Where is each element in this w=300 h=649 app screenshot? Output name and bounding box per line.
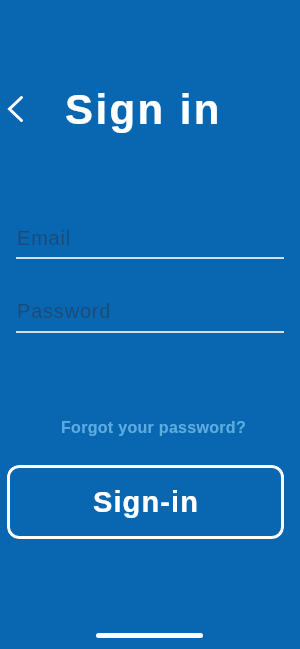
staticText: Sign in xyxy=(65,86,222,133)
staticText: Email xyxy=(17,227,72,249)
button[interactable]: Forgot your password? xyxy=(61,419,246,437)
button[interactable]: Sign-in xyxy=(7,465,284,539)
button[interactable] xyxy=(0,95,30,123)
staticText: Password xyxy=(17,300,112,322)
staticText: Sign-in xyxy=(93,486,199,518)
